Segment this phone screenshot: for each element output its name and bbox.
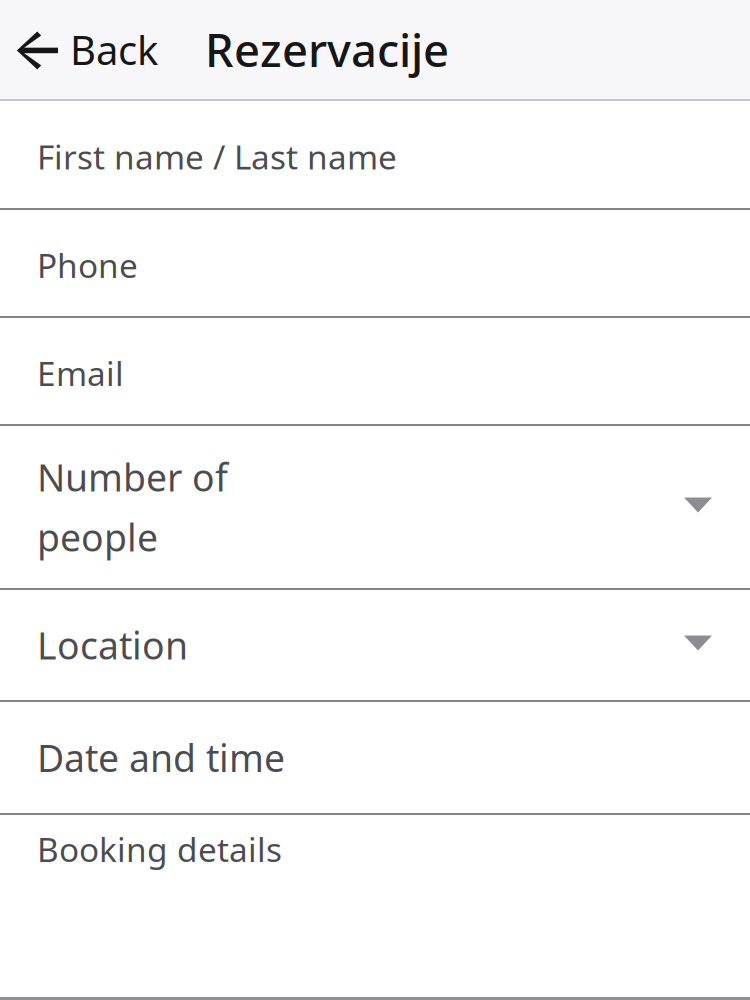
button[interactable]: Date and time [0, 702, 750, 813]
button[interactable]: Booking details [0, 815, 750, 883]
staticText: Date and time [37, 732, 285, 783]
staticText: Back [70, 22, 158, 77]
staticText: people [37, 511, 158, 562]
button[interactable]: First name / Last name [0, 101, 750, 208]
staticText: Rezervacije [205, 19, 449, 80]
staticText: First name / Last name [37, 134, 397, 179]
staticText: Email [37, 350, 124, 396]
button[interactable]: Email [0, 318, 750, 424]
staticText: Phone [37, 242, 138, 288]
staticText: Location [37, 620, 188, 670]
button[interactable]: Phone [0, 210, 750, 316]
button[interactable]: Number of [0, 426, 750, 588]
button[interactable]: Back [0, 0, 168, 99]
staticText: Booking details [37, 826, 282, 872]
button[interactable]: Location [0, 590, 750, 700]
staticText: Number of [37, 452, 228, 502]
